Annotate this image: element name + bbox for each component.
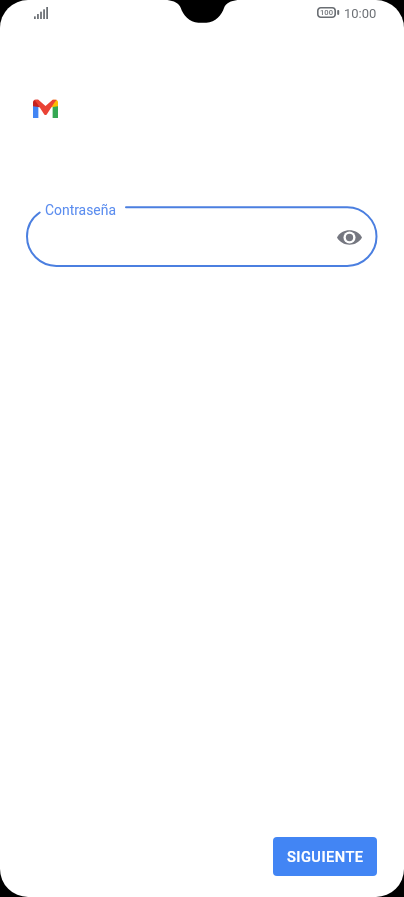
button[interactable]: Contraseña <box>27 207 377 266</box>
staticText: 100 <box>317 8 336 17</box>
staticText: 10:00 <box>344 6 377 21</box>
staticText: SIGUIENTE <box>287 848 364 865</box>
staticText: Contraseña <box>45 202 116 218</box>
button[interactable]: Mostrar contraseña <box>325 213 373 261</box>
button[interactable]: SIGUIENTE <box>273 837 377 876</box>
